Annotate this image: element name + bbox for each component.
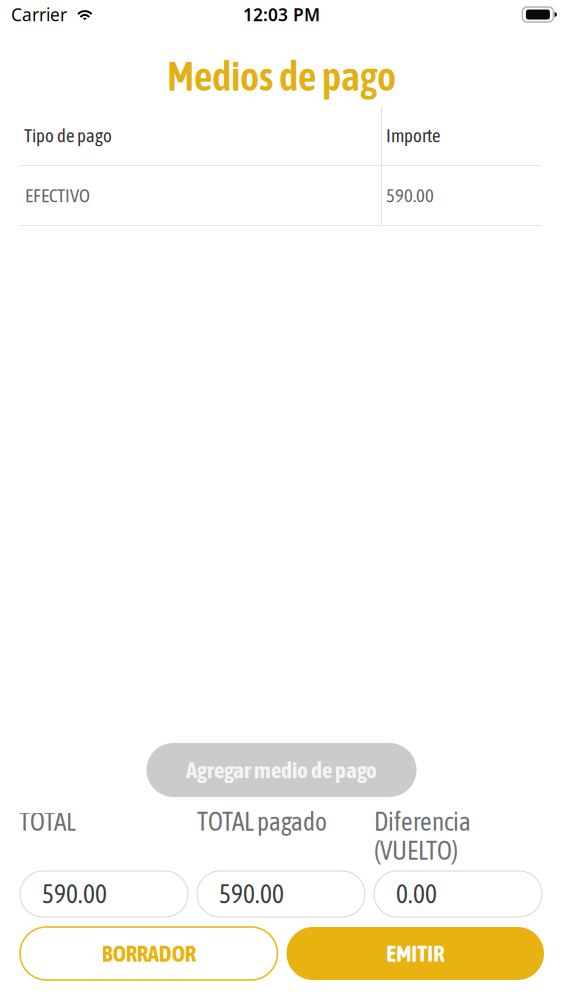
button[interactable]: Diferencia (VUELTO): [374, 871, 542, 917]
staticText: EFECTIVO: [25, 185, 90, 206]
button[interactable]: EFECTIVO: [0, 166, 563, 225]
staticText: Medios de pago: [167, 53, 396, 99]
staticText: Carrier: [11, 3, 67, 26]
staticText: Importe: [386, 125, 440, 146]
button[interactable]: TOTAL: [20, 871, 188, 917]
staticText: Tipo de pago: [24, 125, 112, 146]
button[interactable]: BORRADOR: [20, 927, 277, 980]
staticText: 590.00: [386, 185, 434, 206]
staticText: TOTAL: [19, 807, 76, 836]
staticText: Agregar medio de pago: [186, 757, 377, 783]
staticText: EMITIR: [386, 940, 444, 966]
staticText: Diferencia (VUELTO): [374, 807, 471, 865]
button[interactable]: EMITIR: [286, 927, 544, 980]
staticText: 0.00: [396, 879, 437, 908]
staticText: 590.00: [42, 879, 107, 908]
staticText: TOTAL pagado: [197, 807, 327, 836]
button[interactable]: Agregar medio de pago: [146, 743, 416, 797]
button[interactable]: TOTAL pagado: [197, 871, 365, 917]
staticText: 590.00: [219, 879, 284, 908]
staticText: BORRADOR: [102, 940, 196, 966]
staticText: 12:03 PM: [243, 3, 320, 26]
